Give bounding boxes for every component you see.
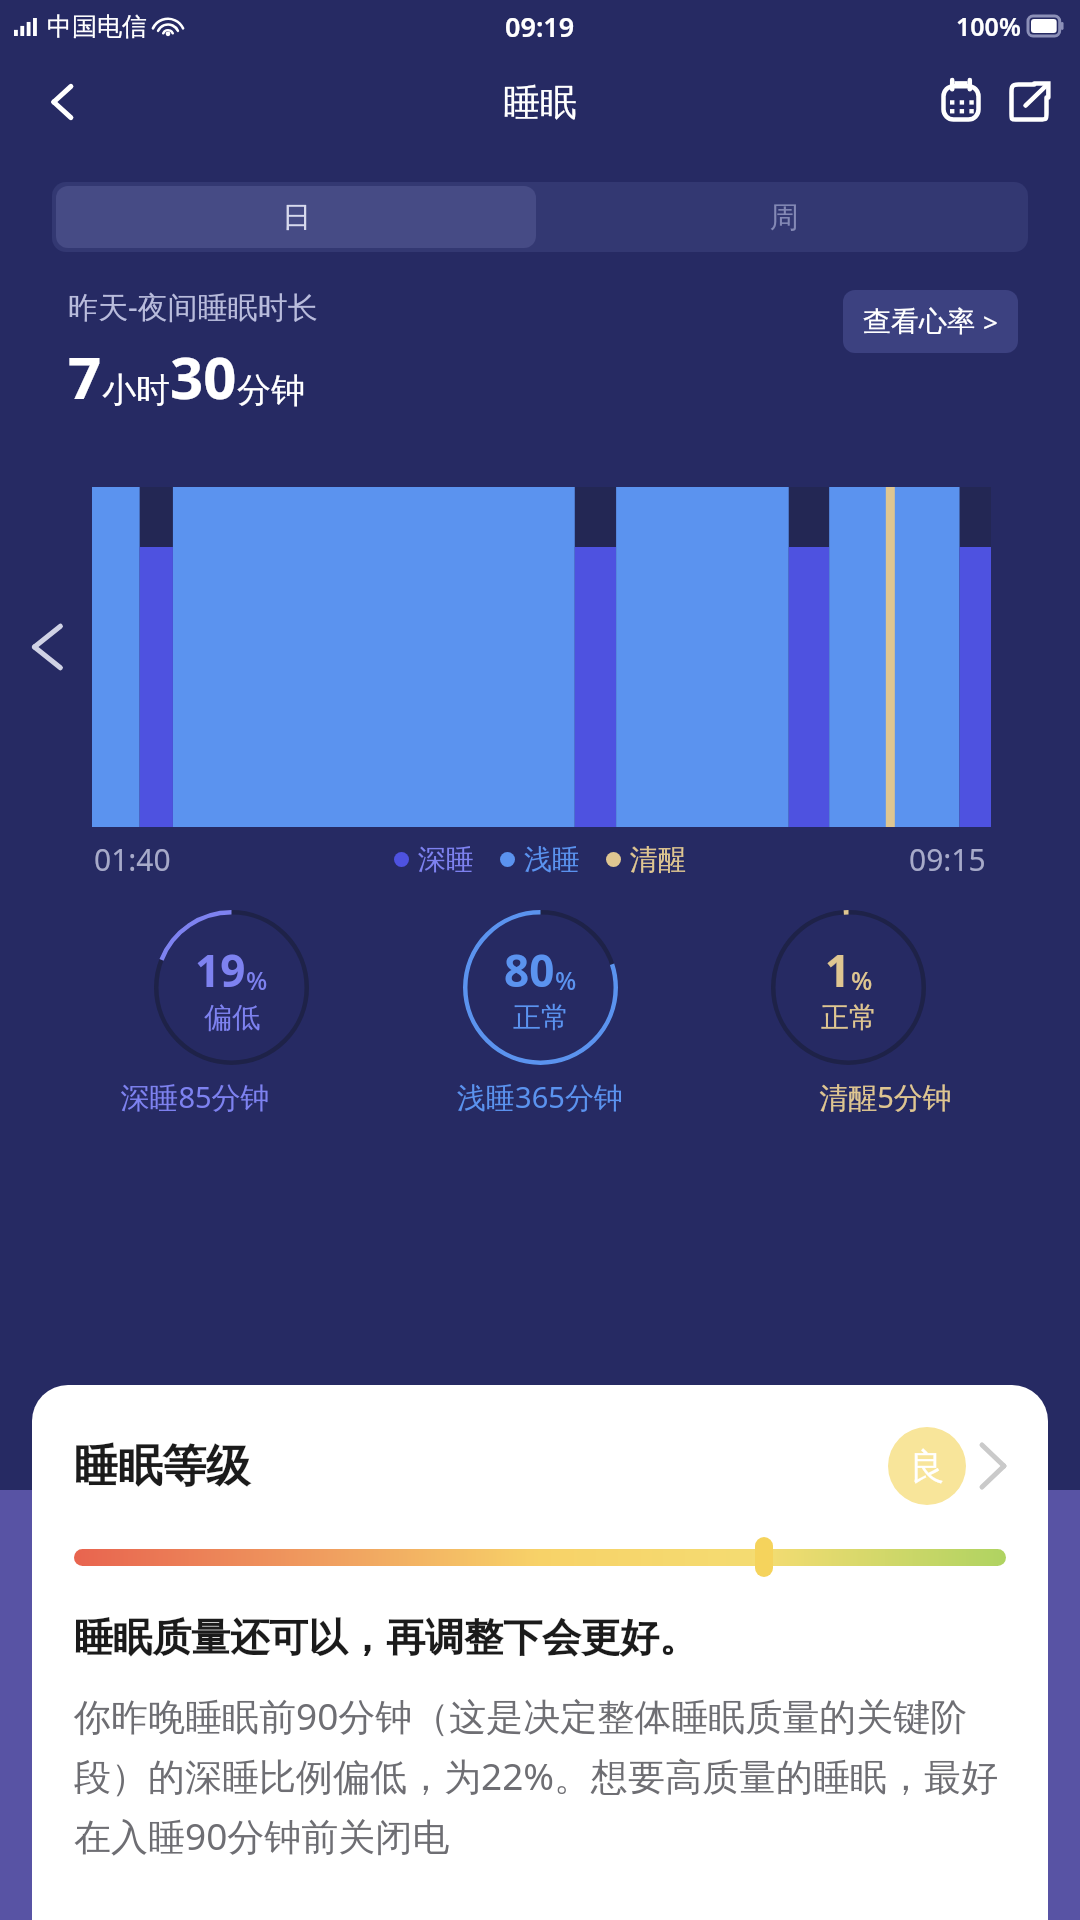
staticText: 100% <box>956 9 1021 43</box>
button[interactable]: Previous day <box>24 607 76 687</box>
staticText: 80 <box>504 940 555 1000</box>
staticText: 深睡85分钟 <box>120 1077 270 1117</box>
staticText: 01:40 <box>94 839 171 880</box>
staticText: 周 <box>770 199 799 236</box>
staticText: 09:19 <box>505 8 575 45</box>
staticText: 深睡 <box>418 842 474 877</box>
staticText: 清醒 <box>630 842 686 877</box>
staticText: 中国电信 <box>47 11 147 42</box>
staticText: 睡眠等级 <box>74 1439 888 1494</box>
staticText: 浅睡 <box>524 842 580 877</box>
staticText: 昨天-夜间睡眠时长 <box>68 286 318 327</box>
button[interactable]: Calendar <box>930 71 992 133</box>
button[interactable]: Back <box>28 72 88 132</box>
staticText: 分钟 <box>237 369 305 412</box>
staticText: 小时 <box>102 369 170 412</box>
staticText: 你昨晚睡眠前90分钟（这是决定整体睡眠质量的关键阶段）的深睡比例偏低，为22%。… <box>74 1690 1006 1861</box>
staticText: 睡眠质量还可以，再调整下会更好。 <box>74 1613 698 1662</box>
staticText: 19 <box>195 940 246 1000</box>
staticText: % <box>246 963 268 997</box>
staticText: 30 <box>170 337 237 416</box>
button[interactable]: 查看心率 <box>843 290 1018 353</box>
staticText: 偏低 <box>204 1000 260 1035</box>
staticText: 浅睡365分钟 <box>457 1077 623 1117</box>
staticText: % <box>851 963 873 997</box>
button[interactable]: 睡眠等级 <box>74 1427 1006 1505</box>
staticText: 良 <box>909 1444 945 1489</box>
staticText: 正常 <box>513 1000 569 1035</box>
staticText: 查看心率 <box>863 304 975 339</box>
staticText: 清醒5分钟 <box>819 1077 952 1117</box>
staticText: % <box>555 963 577 997</box>
staticText: 日 <box>282 199 311 236</box>
button[interactable]: Share <box>998 71 1060 133</box>
staticText: > <box>983 304 998 339</box>
button[interactable]: 周 <box>540 182 1028 252</box>
staticText: 7 <box>68 337 102 416</box>
staticText: 睡眠 <box>503 79 577 126</box>
button[interactable]: 日 <box>56 186 536 248</box>
staticText: 正常 <box>821 1000 877 1035</box>
staticText: 09:15 <box>909 839 986 880</box>
staticText: 1 <box>825 940 851 1000</box>
